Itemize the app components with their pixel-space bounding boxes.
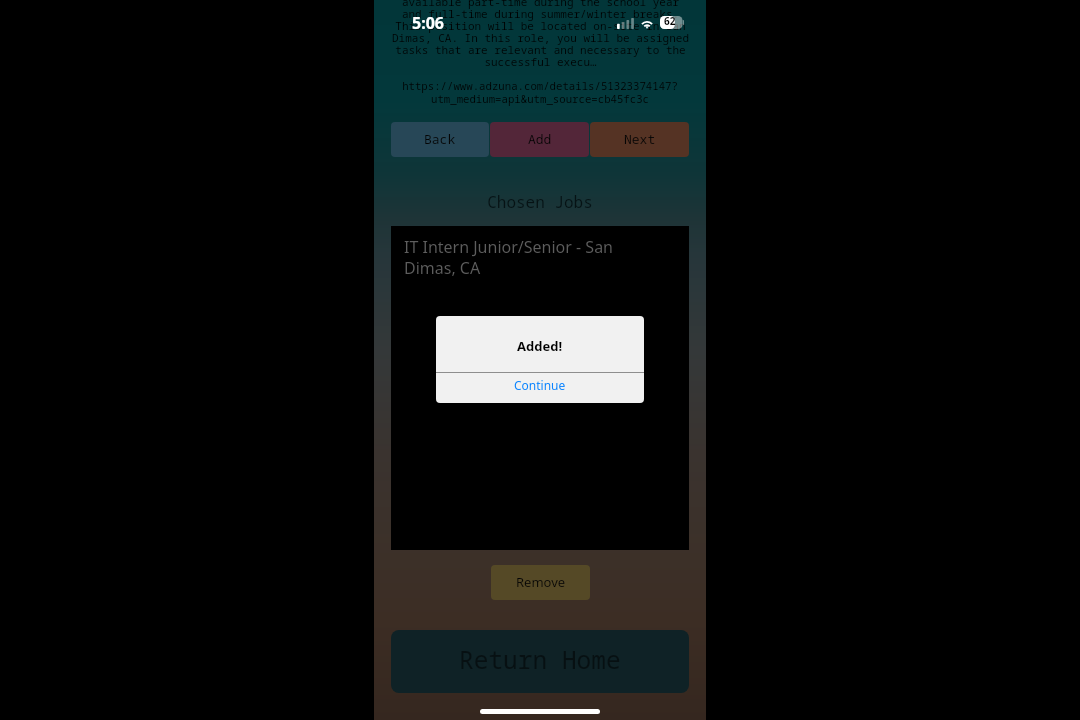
staticText: Back <box>424 130 456 148</box>
staticText: 5:06 <box>412 12 444 34</box>
button[interactable]: Continue <box>436 373 644 403</box>
staticText: https://www.adzuna.com/details/513233741… <box>402 79 678 106</box>
staticText: Continue <box>514 377 566 393</box>
staticText: Return Home <box>459 643 621 676</box>
staticText: Remove <box>516 573 566 591</box>
button[interactable]: Add <box>490 122 589 157</box>
staticText: Chosen Jobs <box>374 191 706 213</box>
staticText: IT Intern Junior/Senior - San Dimas, CA <box>404 236 613 279</box>
staticText: Next <box>624 130 656 148</box>
staticText: 62 <box>664 14 676 28</box>
button[interactable]: Next <box>590 122 689 157</box>
button[interactable]: Back <box>391 122 489 157</box>
staticText: available part-time during the school ye… <box>392 0 689 69</box>
button[interactable]: Remove <box>491 565 590 600</box>
button[interactable]: Return Home <box>391 630 689 693</box>
staticText: Added! <box>517 337 563 355</box>
staticText: Add <box>528 130 552 148</box>
